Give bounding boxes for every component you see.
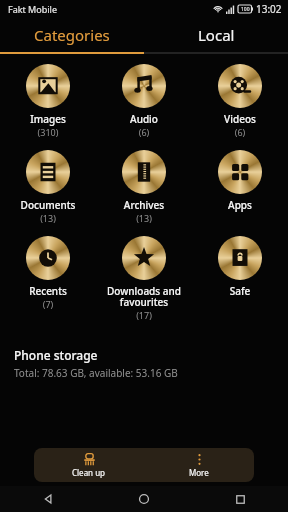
button[interactable]: Apps bbox=[192, 150, 288, 212]
staticText: Categories bbox=[34, 25, 110, 45]
staticText: (17) bbox=[96, 309, 192, 321]
staticText: Phone storage bbox=[14, 347, 98, 363]
button[interactable]: Videos bbox=[192, 64, 288, 138]
staticText: 13:02 bbox=[256, 2, 282, 16]
staticText: (13) bbox=[96, 212, 192, 224]
button[interactable]: Documents bbox=[0, 150, 96, 224]
staticText: (6) bbox=[96, 126, 192, 138]
staticText: Documents bbox=[0, 198, 96, 212]
staticText: Local bbox=[198, 25, 235, 45]
button[interactable]: Recent apps bbox=[192, 486, 288, 512]
button[interactable]: More bbox=[144, 448, 254, 482]
staticText: (6) bbox=[192, 126, 288, 138]
staticText: More bbox=[189, 467, 209, 478]
button[interactable]: Categories bbox=[0, 18, 144, 52]
staticText: Videos bbox=[192, 112, 288, 126]
staticText: Clean up bbox=[72, 467, 106, 478]
button[interactable]: Images bbox=[0, 64, 96, 138]
staticText: Total: 78.63 GB, available: 53.16 GB bbox=[14, 366, 178, 380]
staticText: Apps bbox=[192, 198, 288, 212]
staticText: (310) bbox=[0, 126, 96, 138]
button[interactable]: Back bbox=[0, 486, 96, 512]
staticText: (13) bbox=[0, 212, 96, 224]
staticText: Safe bbox=[192, 284, 288, 298]
staticText: Fakt Mobile bbox=[8, 3, 57, 15]
staticText: Archives bbox=[96, 198, 192, 212]
button[interactable]: Clean up bbox=[34, 448, 144, 482]
button[interactable]: Home bbox=[96, 486, 192, 512]
button[interactable]: Recents bbox=[0, 236, 96, 310]
staticText: (7) bbox=[0, 298, 96, 310]
button[interactable]: Audio bbox=[96, 64, 192, 138]
button[interactable]: Safe bbox=[192, 236, 288, 298]
staticText: Audio bbox=[96, 112, 192, 126]
staticText: Recents bbox=[0, 284, 96, 298]
button[interactable]: Downloads and favourites bbox=[96, 236, 192, 321]
staticText: 100 bbox=[241, 6, 250, 13]
staticText: Downloads and favourites bbox=[96, 284, 192, 309]
button[interactable]: Local bbox=[144, 18, 288, 52]
button[interactable]: Archives bbox=[96, 150, 192, 224]
staticText: Images bbox=[0, 112, 96, 126]
